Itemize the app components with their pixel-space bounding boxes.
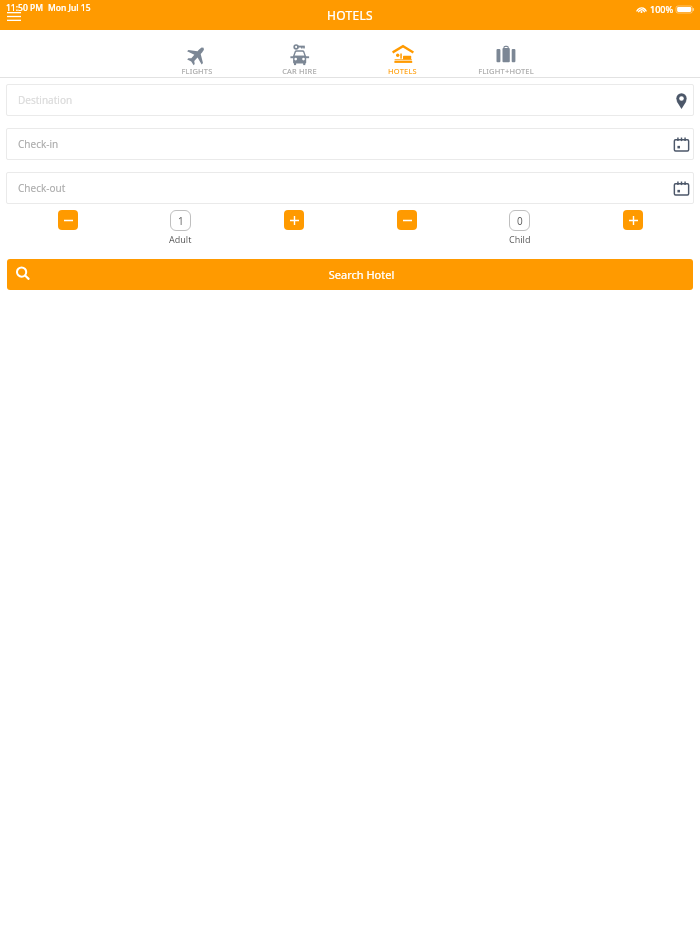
staticText: FLIGHT+HOTEL (478, 66, 534, 76)
button[interactable]: 0 (463, 210, 576, 243)
button[interactable]: Increase (623, 210, 643, 230)
button[interactable]: CAR HIRE (248, 30, 351, 76)
staticText: 100% (650, 3, 674, 15)
staticText: HOTELS (327, 7, 373, 23)
staticText: Mon Jul 15 (48, 2, 91, 14)
button[interactable]: Search Hotel (7, 259, 693, 290)
staticText: HOTELS (388, 66, 417, 76)
button[interactable]: Decrease (58, 210, 78, 230)
staticText: Child (509, 233, 531, 243)
staticText: Search Hotel (30, 267, 693, 282)
staticText: 0 (517, 214, 523, 228)
staticText: 1 (178, 214, 184, 228)
staticText: Destination (18, 93, 73, 107)
staticText: Check-out (18, 181, 66, 195)
staticText: FLIGHTS (181, 66, 213, 76)
staticText: 11:50 PM (6, 2, 43, 14)
button[interactable]: Check-out (6, 172, 694, 204)
button[interactable]: Increase (284, 210, 304, 230)
button[interactable]: FLIGHT+HOTEL (454, 30, 557, 76)
button[interactable]: Destination (6, 84, 694, 116)
button[interactable]: Check-in (6, 128, 694, 160)
button[interactable]: FLIGHTS (145, 30, 248, 76)
button[interactable]: Menu (2, 6, 26, 26)
staticText: Check-in (18, 137, 59, 151)
button[interactable]: Decrease (397, 210, 417, 230)
button[interactable]: HOTELS (351, 30, 454, 76)
button[interactable]: 1 (124, 210, 237, 243)
staticText: Adult (169, 233, 192, 243)
staticText: CAR HIRE (282, 66, 317, 76)
